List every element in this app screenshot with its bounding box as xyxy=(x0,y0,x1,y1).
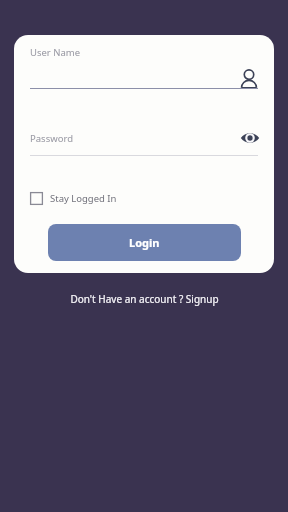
staticText: Stay Logged In xyxy=(50,192,117,205)
button[interactable]: Login xyxy=(48,224,241,261)
staticText: User Name xyxy=(30,46,81,59)
button[interactable]: Show password xyxy=(240,130,260,146)
staticText: Don't Have an account ? Signup xyxy=(70,292,219,306)
button[interactable]: User Name xyxy=(30,43,260,96)
button[interactable]: Stay Logged In xyxy=(30,186,117,210)
staticText: Password xyxy=(30,132,73,145)
button[interactable]: User account xyxy=(238,68,260,90)
staticText: Login xyxy=(129,235,160,250)
button[interactable]: Don't Have an account ? Signup xyxy=(0,289,288,309)
button[interactable]: Password xyxy=(30,127,260,149)
